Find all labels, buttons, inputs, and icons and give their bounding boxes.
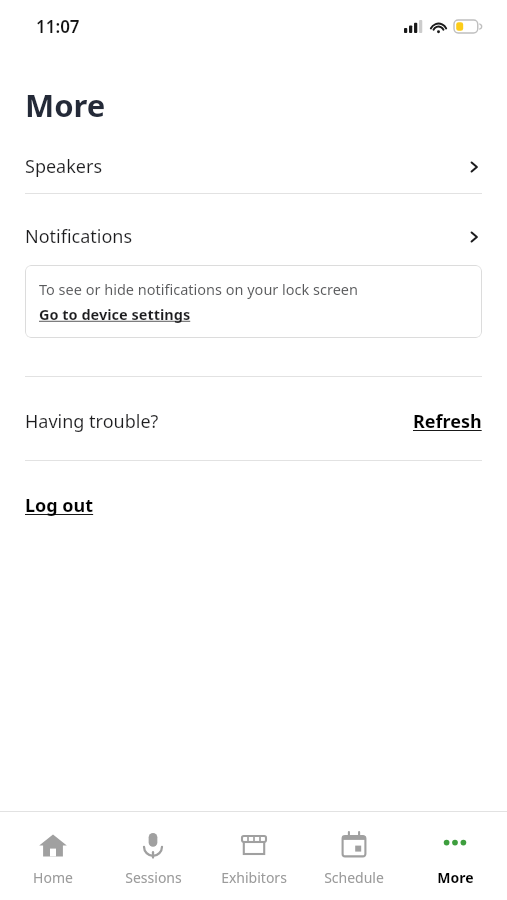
staticText: Sessions: [125, 868, 182, 887]
staticText: Refresh: [413, 409, 482, 434]
button[interactable]: Log out: [0, 493, 507, 518]
button[interactable]: Having trouble?: [0, 409, 507, 434]
staticText: Notifications: [25, 224, 133, 249]
staticText: More: [437, 868, 474, 887]
staticText: Log out: [25, 493, 94, 518]
button[interactable]: Sessions: [105, 812, 201, 887]
staticText: Go to device settings: [39, 304, 191, 324]
staticText: 11:07: [36, 15, 80, 38]
staticText: Exhibitors: [221, 868, 287, 887]
button[interactable]: Schedule: [306, 812, 402, 887]
staticText: Home: [33, 868, 73, 887]
staticText: Having trouble?: [25, 409, 159, 434]
button[interactable]: Speakers: [0, 154, 507, 179]
staticText: Speakers: [25, 154, 103, 179]
staticText: To see or hide notifications on your loc…: [39, 279, 359, 299]
staticText: Schedule: [324, 868, 384, 887]
button[interactable]: Notifications: [0, 224, 507, 249]
button[interactable]: To see or hide notifications on your loc…: [25, 265, 482, 338]
button[interactable]: Exhibitors: [206, 812, 302, 887]
button[interactable]: More: [407, 812, 503, 887]
button[interactable]: Home: [5, 812, 101, 887]
staticText: More: [25, 84, 106, 126]
